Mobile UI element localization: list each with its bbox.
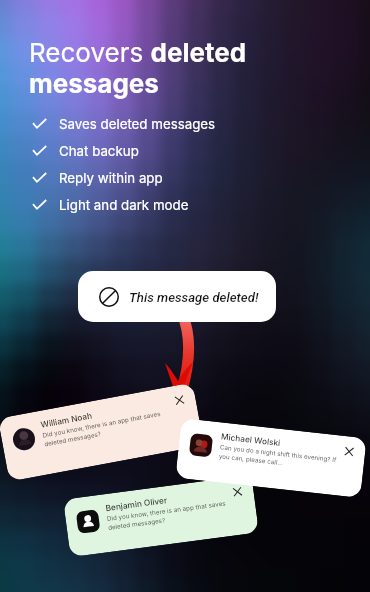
staticText: Did you know, there is an app that saves… — [42, 410, 163, 448]
button[interactable]: Dismiss notification — [175, 395, 184, 405]
staticText: Chat backup — [59, 143, 139, 159]
staticText: Saves deleted messages — [59, 116, 216, 132]
button[interactable]: Dismiss notification — [233, 487, 242, 496]
button[interactable]: Dismiss notification — [345, 447, 354, 456]
staticText: Did you know, there is an app that saves… — [106, 499, 228, 532]
staticText: William Noah — [40, 410, 94, 430]
staticText: Can you do a night shift this evening? I… — [218, 443, 338, 473]
staticText: Light and dark mode — [59, 197, 189, 213]
button[interactable]: This message deleted! — [78, 271, 276, 322]
staticText: Michael Wolski — [220, 431, 281, 448]
button[interactable]: Benjamin Oliver — [63, 475, 259, 557]
button[interactable]: Michael Wolski — [175, 418, 367, 498]
staticText: Recovers deleted messages — [29, 37, 269, 99]
staticText: This message deleted! — [129, 290, 259, 305]
staticText: Reply within app — [59, 170, 163, 186]
button[interactable]: William Noah — [0, 382, 204, 481]
staticText: Benjamin Oliver — [105, 495, 169, 513]
